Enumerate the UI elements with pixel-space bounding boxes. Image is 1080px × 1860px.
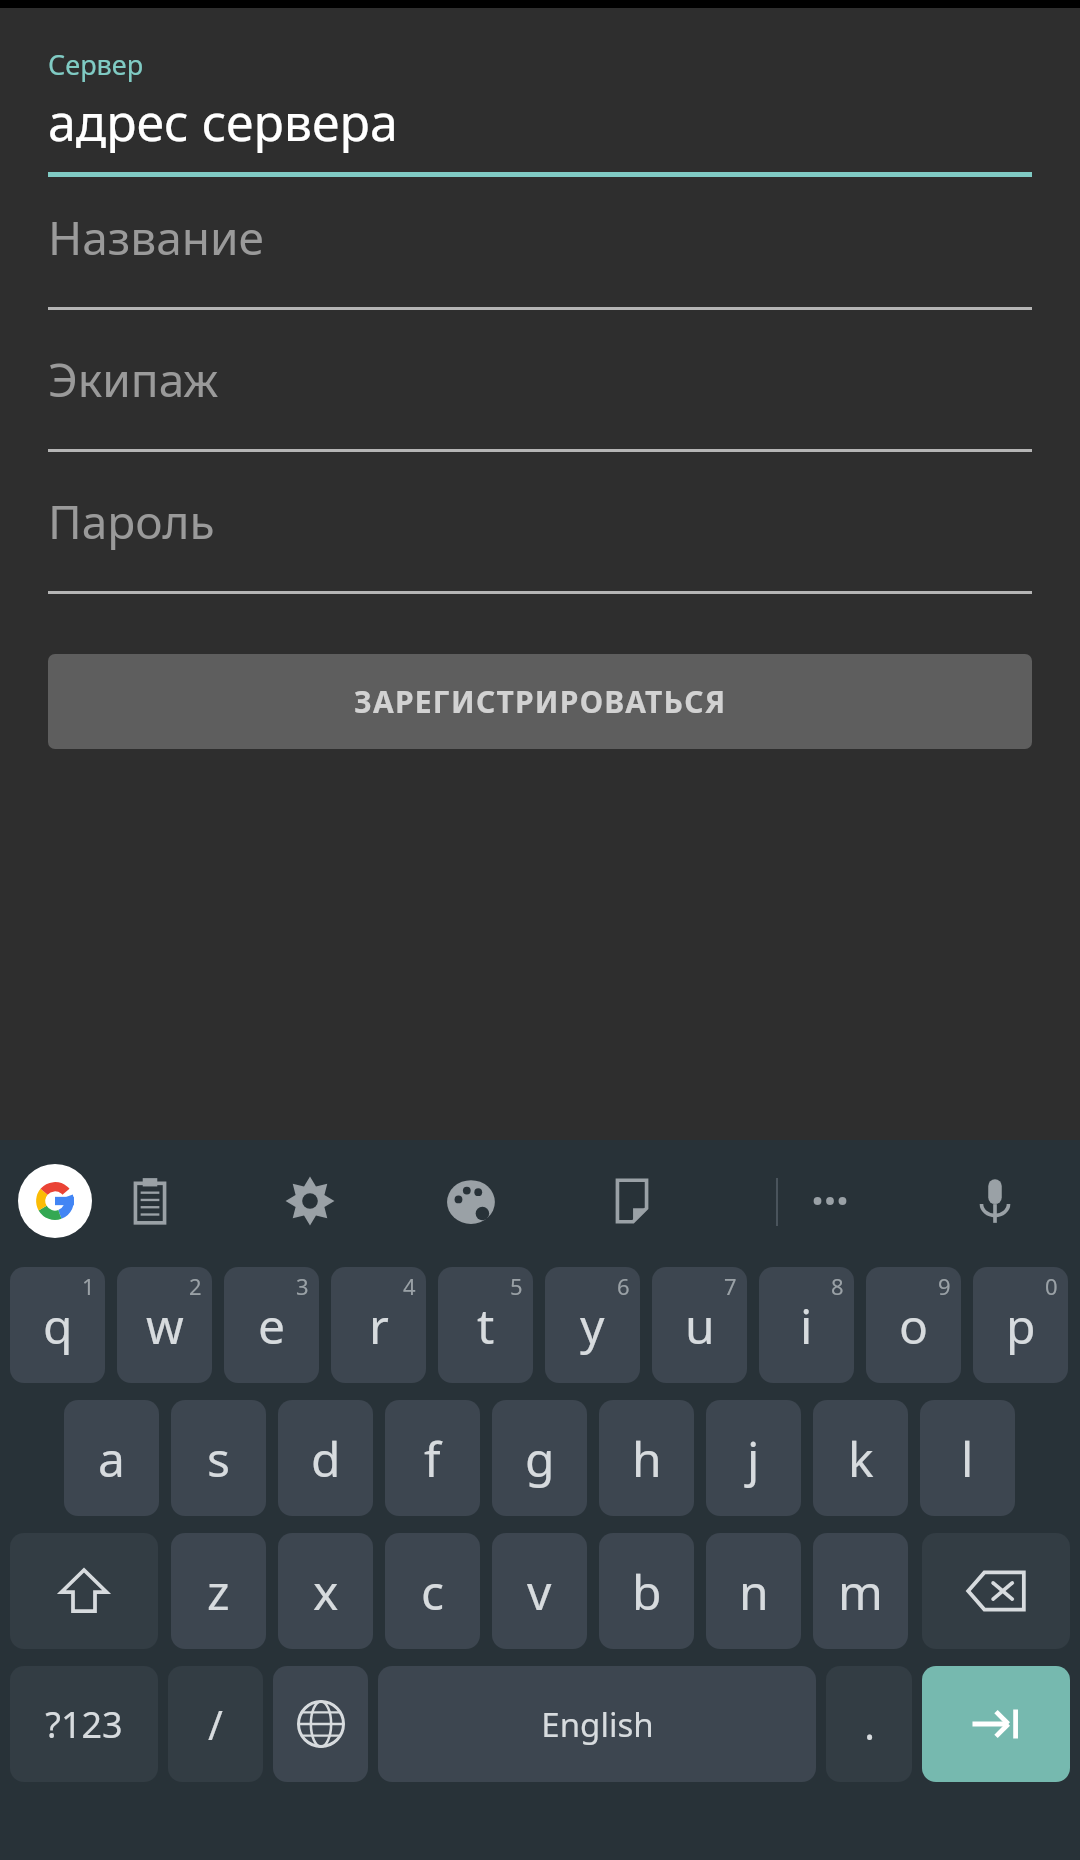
button[interactable]: v: [492, 1533, 587, 1649]
staticText: 1: [82, 1271, 95, 1301]
staticText: v: [527, 1559, 552, 1624]
staticText: ЗАРЕГИСТРИРОВАТЬСЯ: [354, 681, 727, 722]
staticText: q: [43, 1293, 73, 1358]
button[interactable]: e: [224, 1267, 319, 1383]
staticText: 5: [510, 1271, 523, 1301]
staticText: e: [258, 1293, 286, 1358]
button[interactable]: u: [652, 1267, 747, 1383]
button[interactable]: f: [385, 1400, 480, 1516]
button[interactable]: More options: [790, 1161, 870, 1241]
staticText: 4: [403, 1271, 416, 1301]
staticText: Название: [48, 206, 264, 269]
button[interactable]: c: [385, 1533, 480, 1649]
staticText: i: [800, 1293, 813, 1358]
button[interactable]: Settings: [270, 1161, 350, 1241]
button[interactable]: y: [545, 1267, 640, 1383]
staticText: f: [424, 1426, 441, 1491]
button[interactable]: ЗАРЕГИСТРИРОВАТЬСЯ: [48, 654, 1032, 749]
button[interactable]: Shift: [10, 1533, 158, 1649]
staticText: Сервер: [48, 46, 144, 83]
staticText: r: [369, 1293, 389, 1358]
button[interactable]: Space: [378, 1666, 816, 1782]
staticText: t: [477, 1293, 495, 1358]
staticText: u: [685, 1293, 715, 1358]
button[interactable]: p: [973, 1267, 1068, 1383]
staticText: 6: [617, 1271, 630, 1301]
button[interactable]: Clipboard: [110, 1161, 190, 1241]
staticText: 9: [938, 1271, 951, 1301]
staticText: l: [961, 1426, 974, 1491]
button[interactable]: l: [920, 1400, 1015, 1516]
staticText: d: [311, 1426, 341, 1491]
staticText: w: [146, 1293, 184, 1358]
staticText: 8: [831, 1271, 844, 1301]
button[interactable]: s: [171, 1400, 266, 1516]
staticText: k: [848, 1426, 874, 1491]
staticText: y: [580, 1293, 605, 1358]
button[interactable]: Change language: [273, 1666, 368, 1782]
staticText: c: [421, 1559, 445, 1624]
staticText: g: [525, 1426, 555, 1491]
staticText: b: [632, 1559, 662, 1624]
staticText: 0: [1045, 1271, 1058, 1301]
button[interactable]: Voice input: [955, 1161, 1035, 1241]
button[interactable]: g: [492, 1400, 587, 1516]
staticText: Пароль: [48, 490, 215, 553]
button[interactable]: r: [331, 1267, 426, 1383]
staticText: адрес сервера: [48, 88, 398, 156]
button[interactable]: Экипаж: [48, 332, 1032, 452]
button[interactable]: i: [759, 1267, 854, 1383]
button[interactable]: o: [866, 1267, 961, 1383]
button[interactable]: Period: [826, 1666, 912, 1782]
button[interactable]: Themes: [432, 1161, 512, 1241]
button[interactable]: k: [813, 1400, 908, 1516]
staticText: n: [739, 1559, 769, 1624]
button[interactable]: Stickers: [592, 1161, 672, 1241]
staticText: m: [838, 1559, 883, 1624]
button[interactable]: m: [813, 1533, 908, 1649]
staticText: /: [208, 1697, 223, 1751]
button[interactable]: d: [278, 1400, 373, 1516]
staticText: a: [98, 1426, 125, 1491]
staticText: 3: [296, 1271, 309, 1301]
button[interactable]: j: [706, 1400, 801, 1516]
staticText: 7: [724, 1271, 737, 1301]
button[interactable]: w: [117, 1267, 212, 1383]
button[interactable]: q: [10, 1267, 105, 1383]
staticText: j: [747, 1426, 760, 1491]
staticText: x: [313, 1559, 339, 1624]
staticText: .: [864, 1697, 875, 1751]
button[interactable]: n: [706, 1533, 801, 1649]
button[interactable]: b: [599, 1533, 694, 1649]
button[interactable]: Slash: [168, 1666, 263, 1782]
staticText: s: [207, 1426, 230, 1491]
staticText: ?123: [45, 1700, 123, 1749]
staticText: z: [207, 1559, 230, 1624]
staticText: Экипаж: [48, 348, 219, 411]
button[interactable]: Google: [18, 1164, 92, 1238]
staticText: p: [1006, 1293, 1036, 1358]
button[interactable]: a: [64, 1400, 159, 1516]
button[interactable]: t: [438, 1267, 533, 1383]
button[interactable]: Название: [48, 190, 1032, 310]
button[interactable]: h: [599, 1400, 694, 1516]
button[interactable]: z: [171, 1533, 266, 1649]
staticText: h: [632, 1426, 662, 1491]
button[interactable]: x: [278, 1533, 373, 1649]
button[interactable]: Next: [922, 1666, 1070, 1782]
staticText: English: [541, 1702, 654, 1747]
button[interactable]: Symbols: [10, 1666, 158, 1782]
staticText: o: [899, 1293, 929, 1358]
staticText: 2: [189, 1271, 202, 1301]
button[interactable]: Пароль: [48, 474, 1032, 594]
button[interactable]: Backspace: [922, 1533, 1070, 1649]
